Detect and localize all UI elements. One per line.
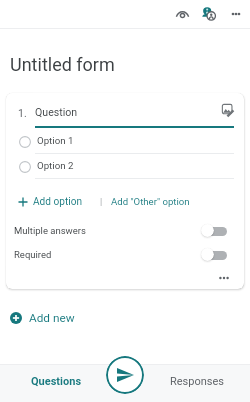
staticText: 1. bbox=[18, 107, 27, 119]
staticText: Add new bbox=[29, 311, 75, 325]
staticText: Add option bbox=[33, 196, 82, 208]
button[interactable]: Question options bbox=[214, 268, 234, 288]
button[interactable]: Add "Other" option bbox=[108, 192, 193, 211]
button[interactable]: Option 2 bbox=[6, 155, 244, 180]
button[interactable]: Multiple answers bbox=[6, 218, 244, 242]
button[interactable]: Questions bbox=[18, 364, 94, 402]
button[interactable]: Required bbox=[6, 242, 244, 266]
button[interactable]: More options bbox=[224, 2, 248, 26]
staticText: Required bbox=[14, 249, 52, 260]
staticText: Responses bbox=[170, 375, 225, 388]
staticText: Option 1 bbox=[37, 135, 74, 146]
button[interactable]: Preview bbox=[170, 2, 194, 26]
staticText: Add "Other" option bbox=[111, 196, 190, 207]
staticText: Multiple answers bbox=[14, 225, 86, 236]
button[interactable]: Add new bbox=[6, 307, 83, 329]
button[interactable]: Responses bbox=[159, 364, 235, 402]
staticText: Question bbox=[35, 106, 78, 118]
button[interactable]: Add image bbox=[220, 102, 236, 118]
staticText: | bbox=[100, 196, 103, 207]
staticText: Untitled form bbox=[10, 54, 115, 75]
button[interactable]: Option 1 bbox=[6, 130, 244, 155]
button[interactable]: Add option bbox=[15, 192, 85, 212]
button[interactable]: Send form bbox=[106, 356, 144, 394]
button[interactable]: Add collaborators bbox=[197, 2, 221, 26]
staticText: Questions bbox=[31, 375, 82, 388]
staticText: Option 2 bbox=[37, 160, 74, 171]
